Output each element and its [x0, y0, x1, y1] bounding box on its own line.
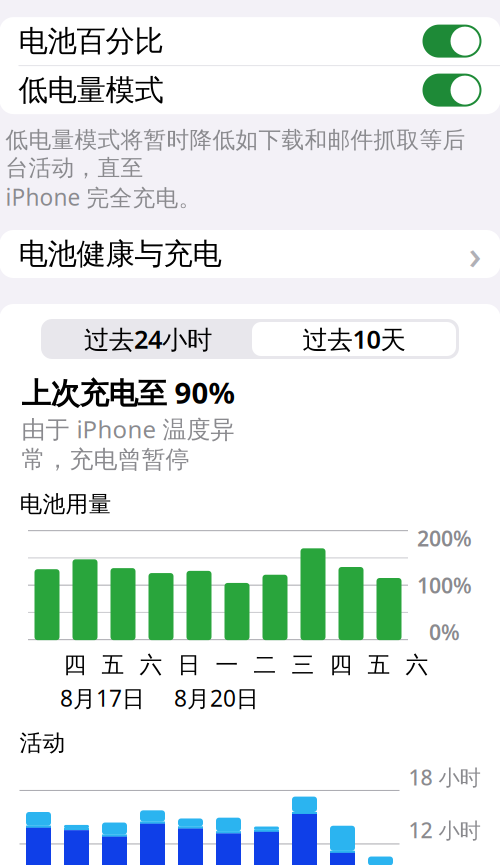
- staticText: 六: [139, 651, 162, 679]
- staticText: 四: [63, 651, 86, 679]
- staticText: 过去10天: [302, 322, 405, 356]
- staticText: 过去24小时: [84, 322, 212, 356]
- staticText: 活动: [19, 729, 65, 757]
- staticText: 低电量模式将暂时降低如下载和邮件抓取等后台活动，直至 iPhone 完全充电。: [5, 126, 465, 212]
- staticText: 100%: [417, 571, 472, 599]
- staticText: 8月20日: [174, 683, 259, 713]
- staticText: 六: [405, 651, 428, 679]
- staticText: 五: [101, 651, 124, 679]
- staticText: 电池健康与充电: [18, 236, 221, 272]
- button[interactable]: 电池健康与充电: [0, 230, 500, 278]
- staticText: 18 小时: [408, 763, 480, 791]
- staticText: 日: [177, 651, 200, 679]
- staticText: 二: [253, 651, 276, 679]
- button[interactable]: 过去24小时: [44, 322, 252, 356]
- staticText: 三: [291, 651, 314, 679]
- staticText: 低电量模式: [18, 72, 163, 108]
- staticText: 200%: [417, 524, 472, 552]
- staticText: 四: [329, 651, 352, 679]
- staticText: 由于 iPhone 温度异常，充电曾暂停: [21, 413, 234, 474]
- staticText: 12 小时: [408, 816, 480, 844]
- staticText: 五: [367, 651, 390, 679]
- staticText: 电池用量: [19, 490, 111, 518]
- button[interactable]: 过去10天: [252, 322, 456, 356]
- staticText: ›: [468, 227, 481, 280]
- staticText: 上次充电至 90%: [21, 373, 234, 412]
- staticText: 一: [215, 651, 238, 679]
- staticText: 0%: [429, 618, 460, 646]
- button[interactable]: 电池百分比: [0, 17, 500, 65]
- button[interactable]: 低电量模式: [0, 66, 500, 114]
- staticText: 电池百分比: [18, 23, 163, 59]
- staticText: 8月17日: [60, 683, 145, 713]
